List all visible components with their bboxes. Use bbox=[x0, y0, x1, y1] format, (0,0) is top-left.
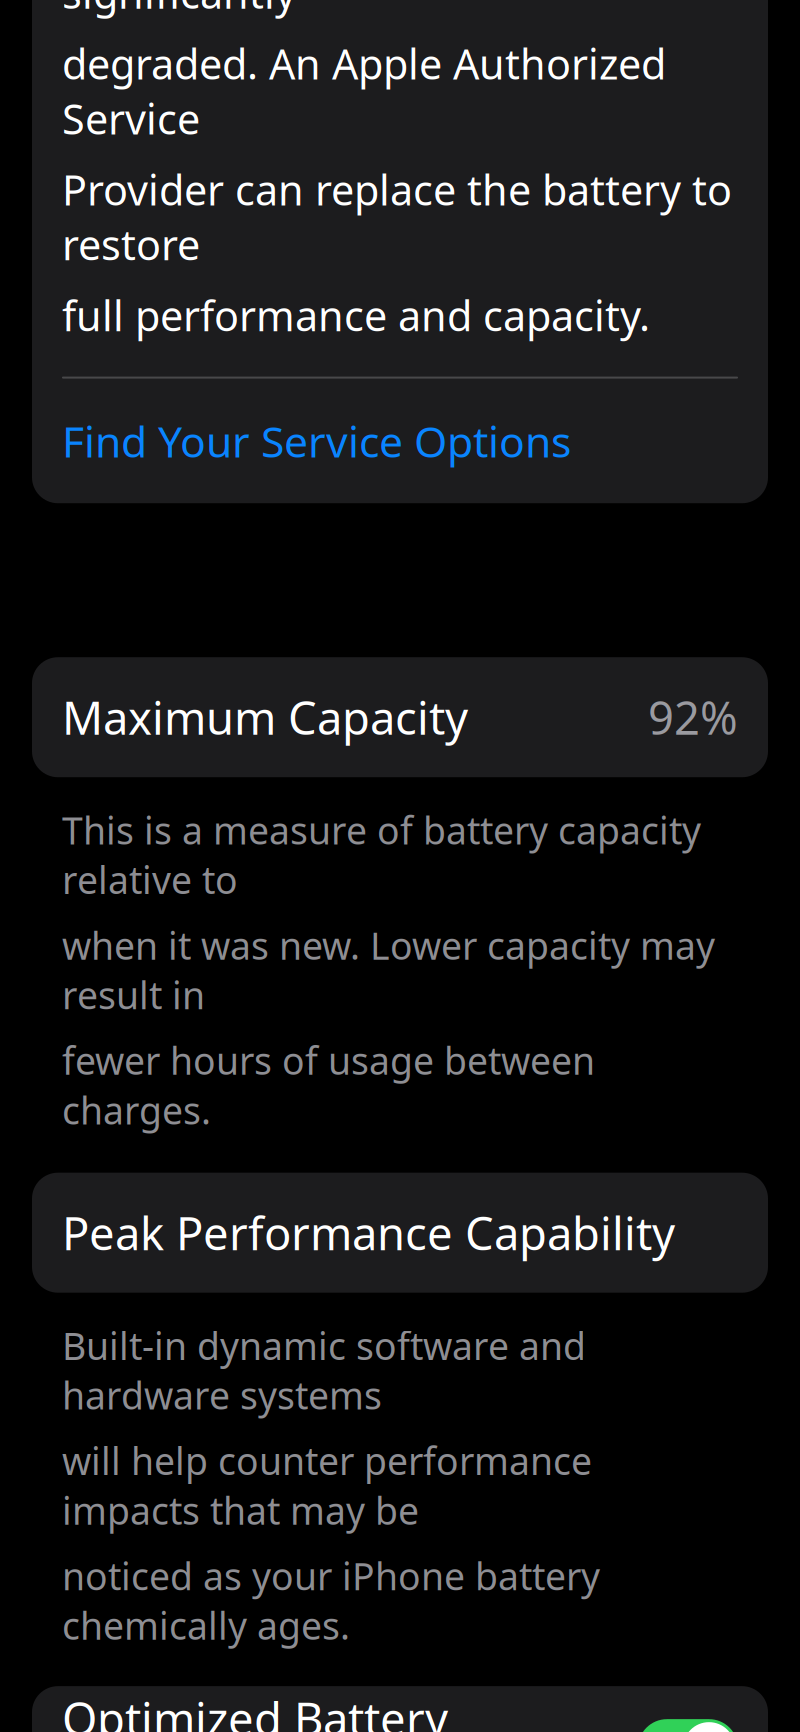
staticText: 92% bbox=[648, 687, 738, 747]
staticText: full performance and capacity. bbox=[62, 288, 650, 343]
staticText: degraded. An Apple Authorized Service bbox=[62, 36, 666, 146]
staticText: will help counter performance impacts th… bbox=[62, 1436, 592, 1535]
button[interactable]: Peak Performance Capability bbox=[0, 1173, 800, 1293]
staticText: Provider can replace the battery to rest… bbox=[62, 162, 732, 272]
staticText: Peak Performance Capability bbox=[62, 1203, 675, 1263]
staticText: Built-in dynamic software and hardware s… bbox=[62, 1321, 586, 1420]
button[interactable]: Find Your Service Options bbox=[62, 379, 738, 503]
button[interactable]: Maximum Capacity bbox=[0, 657, 800, 777]
staticText: Optimized Battery Charging bbox=[62, 1688, 448, 1732]
staticText: This is a measure of battery capacity re… bbox=[62, 805, 701, 904]
staticText: Find Your Service Options bbox=[62, 413, 571, 469]
staticText: fewer hours of usage between charges. bbox=[62, 1035, 595, 1135]
staticText: when it was new. Lower capacity may resu… bbox=[62, 920, 715, 1020]
staticText: Your battery’s health is significantly bbox=[62, 0, 506, 20]
button[interactable]: Optimized Battery Charging bbox=[0, 1686, 800, 1732]
staticText: noticed as your iPhone battery chemicall… bbox=[62, 1551, 600, 1650]
staticText: Maximum Capacity bbox=[62, 687, 468, 747]
